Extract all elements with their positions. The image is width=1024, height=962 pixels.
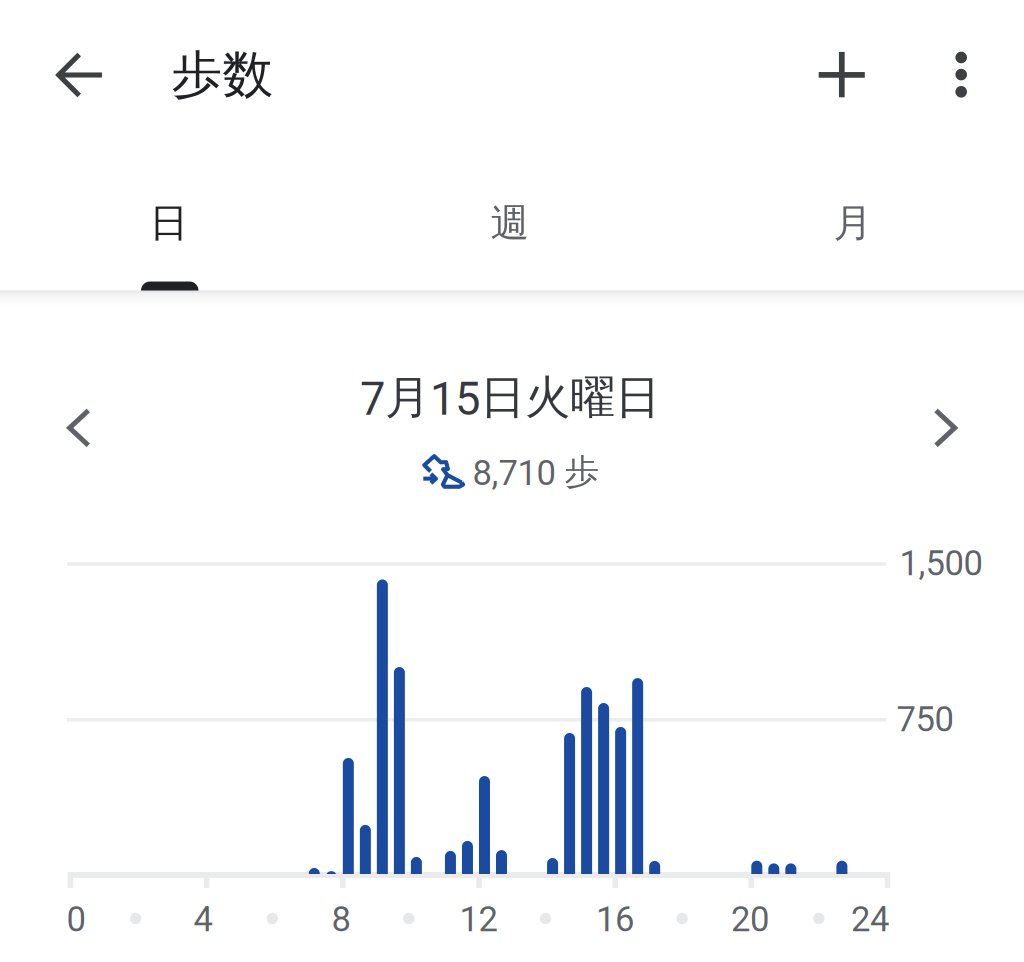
button[interactable]: Add (806, 39, 878, 111)
button[interactable]: 月 (733, 186, 973, 260)
staticText: 8,710 歩 (472, 450, 599, 494)
staticText: 4 (193, 899, 212, 940)
staticText: 750 (896, 699, 953, 740)
button[interactable]: Previous day (45, 392, 117, 464)
button[interactable]: 日 (49, 186, 289, 260)
staticText: 0 (66, 899, 85, 940)
staticText: 週 (490, 199, 529, 247)
staticText: 7月15日火曜日 (360, 369, 660, 426)
staticText: 12 (459, 899, 497, 940)
staticText: 8 (331, 899, 350, 940)
staticText: 月 (833, 199, 872, 247)
staticText: 日 (149, 199, 188, 247)
button[interactable]: Next day (911, 392, 983, 464)
button[interactable]: Back (46, 39, 118, 111)
button[interactable]: More options (925, 39, 997, 111)
staticText: 1,500 (899, 543, 982, 584)
button[interactable]: 週 (390, 186, 630, 260)
staticText: 20 (731, 899, 769, 940)
staticText: 16 (596, 899, 634, 940)
staticText: 24 (851, 899, 889, 940)
staticText: 歩数 (171, 43, 273, 107)
